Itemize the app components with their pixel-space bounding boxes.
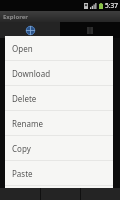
button[interactable]: Storage [60, 22, 120, 38]
button[interactable]: Browser [0, 22, 60, 38]
staticText: Download [12, 68, 51, 79]
button[interactable]: Delete [5, 86, 113, 110]
button[interactable]: Copy [5, 136, 113, 160]
staticText: Explorer [3, 13, 28, 21]
staticText: Copy [12, 143, 31, 154]
staticText: Delete [12, 93, 37, 104]
staticText: 5:37 [105, 1, 118, 10]
button[interactable]: Paste [5, 161, 113, 185]
staticText: Paste [12, 168, 33, 179]
button[interactable]: Rename [5, 111, 113, 135]
staticText: Rename [12, 118, 43, 129]
button[interactable]: Open [5, 36, 113, 60]
button[interactable]: Download [5, 61, 113, 85]
staticText: Open [12, 43, 33, 54]
